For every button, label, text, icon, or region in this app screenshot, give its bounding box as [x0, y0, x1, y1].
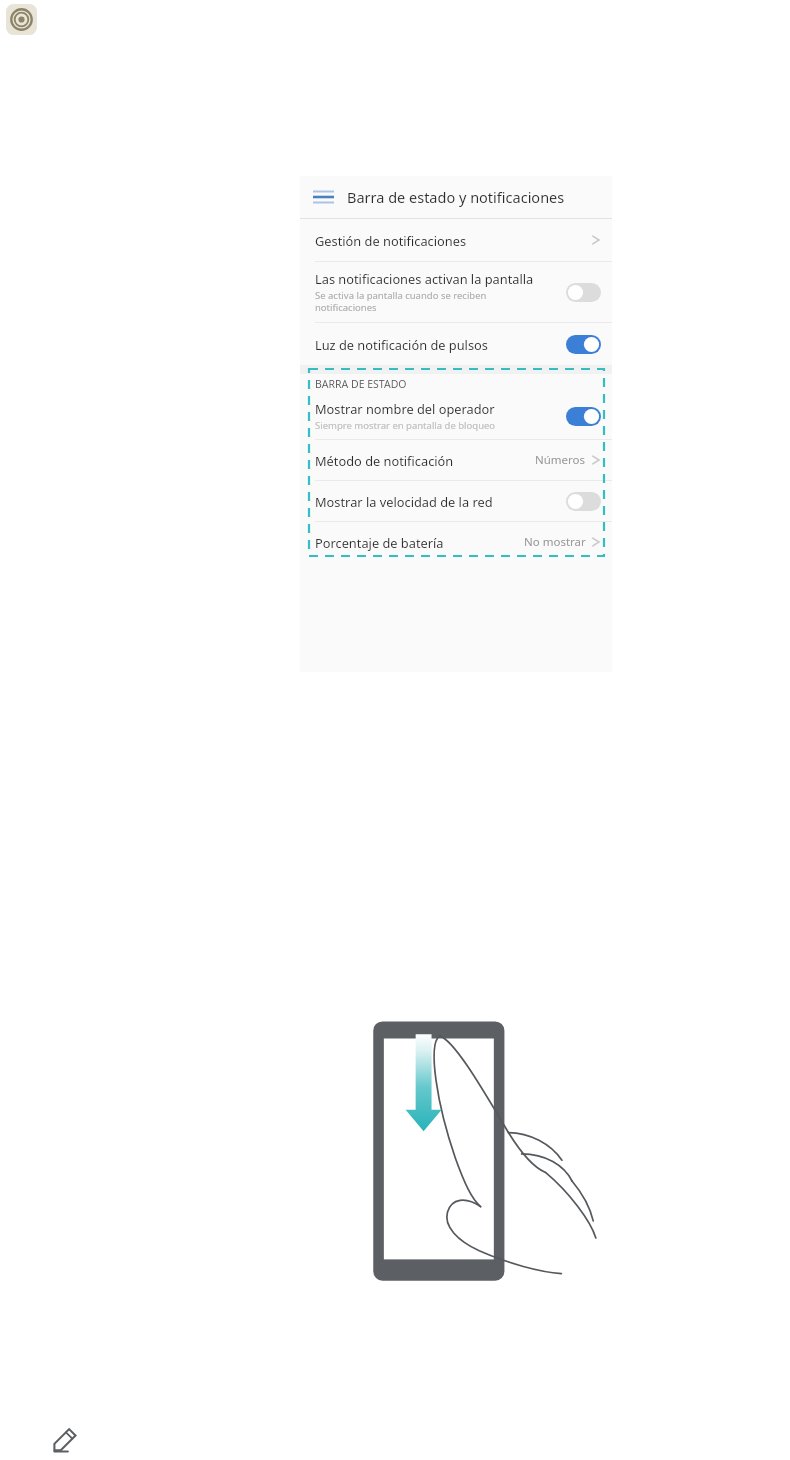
button[interactable]: Método de notificación	[300, 440, 612, 480]
button[interactable]: Toggle off	[566, 492, 601, 511]
staticText: Barra de estado y notificaciones	[347, 187, 565, 207]
button[interactable]: Toggle off	[566, 283, 601, 302]
button[interactable]: Toggle on	[566, 335, 601, 354]
button[interactable]: Mostrar la velocidad de la red	[300, 481, 612, 521]
button[interactable]: Gestión de notificaciones	[300, 219, 612, 261]
staticText: Luz de notificación de pulsos	[315, 336, 488, 353]
staticText: Las notificaciones activan la pantalla	[315, 270, 534, 287]
staticText: Mostrar nombre del operador	[315, 400, 495, 417]
staticText: Porcentaje de batería	[315, 534, 444, 551]
button[interactable]: Luz de notificación de pulsos	[300, 323, 612, 365]
button[interactable]: Edit	[48, 1424, 80, 1456]
other: Menu	[313, 189, 334, 205]
staticText: Método de notificación	[315, 452, 454, 469]
button[interactable]: Toggle on	[566, 407, 601, 426]
button[interactable]: App icon	[6, 4, 37, 35]
staticText: Se activa la pantalla cuando se reciben …	[315, 289, 487, 314]
staticText: BARRA DE ESTADO	[315, 377, 407, 391]
staticText: No mostrar	[524, 534, 586, 550]
button[interactable]: Mostrar nombre del operador	[300, 393, 612, 439]
staticText: Mostrar la velocidad de la red	[315, 493, 493, 510]
button[interactable]: Menu	[300, 176, 612, 218]
staticText: Siempre mostrar en pantalla de bloqueo	[315, 419, 496, 432]
button[interactable]: Porcentaje de batería	[300, 522, 612, 562]
button[interactable]: Las notificaciones activan la pantalla	[300, 262, 612, 322]
staticText: Gestión de notificaciones	[315, 232, 467, 249]
staticText: Números	[535, 452, 586, 468]
